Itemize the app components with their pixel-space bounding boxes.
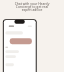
staticText: Chat with your Heardy Concierge to get r… xyxy=(1,1,63,11)
